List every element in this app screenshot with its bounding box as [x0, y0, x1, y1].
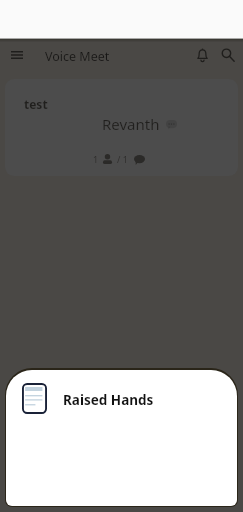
button[interactable]: Raised Hands	[6, 376, 237, 420]
staticText: Raised Hands	[63, 391, 154, 409]
staticText: Voice Meet	[45, 48, 110, 65]
button[interactable]: Notifications	[188, 41, 216, 69]
staticText: test	[24, 96, 48, 112]
staticText: / 1	[117, 153, 128, 165]
button[interactable]: test	[5, 79, 238, 176]
button[interactable]: Menu	[3, 41, 31, 69]
button[interactable]: Search	[214, 41, 242, 69]
staticText: Revanth	[102, 114, 160, 134]
staticText: 1	[93, 153, 99, 165]
